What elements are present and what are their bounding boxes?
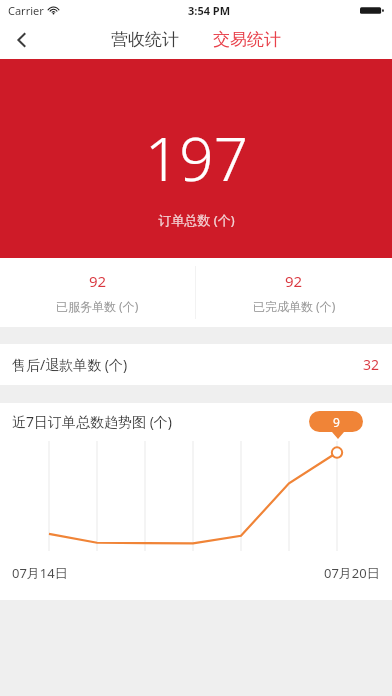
staticText: 近7日订单总数趋势图 (个) (12, 412, 173, 431)
button[interactable]: 92 (0, 258, 195, 327)
staticText: 订单总数 (个) (158, 211, 235, 229)
staticText: 32 (363, 355, 380, 374)
button[interactable]: 售后/退款单数 (个) (0, 344, 392, 385)
staticText: 9 (333, 414, 340, 430)
button[interactable]: Back (0, 20, 44, 59)
staticText: 已服务单数 (个) (56, 298, 139, 314)
button[interactable]: 交易统计 (203, 23, 291, 56)
staticText: 07月20日 (324, 564, 380, 582)
button[interactable]: 92 (196, 258, 392, 327)
staticText: 92 (89, 271, 107, 291)
staticText: 已完成单数 (个) (253, 298, 336, 314)
staticText: 交易统计 (213, 29, 281, 50)
staticText: 197 (145, 117, 248, 199)
button[interactable]: 营收统计 (101, 23, 189, 56)
staticText: 售后/退款单数 (个) (12, 355, 128, 374)
staticText: 3:54 PM (188, 3, 231, 18)
staticText: 07月14日 (12, 564, 68, 582)
staticText: 营收统计 (111, 29, 179, 50)
staticText: 92 (285, 271, 303, 291)
staticText: Carrier (8, 3, 44, 18)
